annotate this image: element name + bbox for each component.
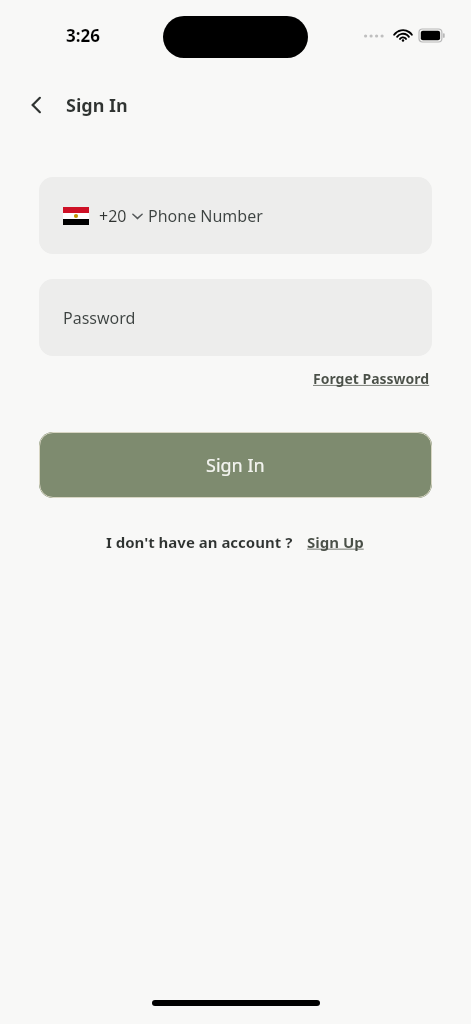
- button[interactable]: Sign In: [39, 432, 432, 498]
- staticText: +20: [99, 205, 127, 227]
- staticText: Forget Password: [313, 369, 430, 388]
- staticText: Sign In: [66, 93, 128, 118]
- staticText: I don't have an account ?: [106, 532, 293, 552]
- staticText: Password: [63, 307, 136, 329]
- staticText: Phone Number: [148, 205, 263, 227]
- button[interactable]: Password: [39, 279, 432, 356]
- button[interactable]: Forget Password: [311, 366, 432, 391]
- staticText: Sign Up: [307, 532, 364, 552]
- button[interactable]: Sign Up: [305, 529, 366, 555]
- button[interactable]: +20: [39, 177, 432, 254]
- button[interactable]: Back: [20, 88, 54, 122]
- staticText: Sign In: [206, 453, 265, 478]
- staticText: 3:26: [66, 24, 100, 47]
